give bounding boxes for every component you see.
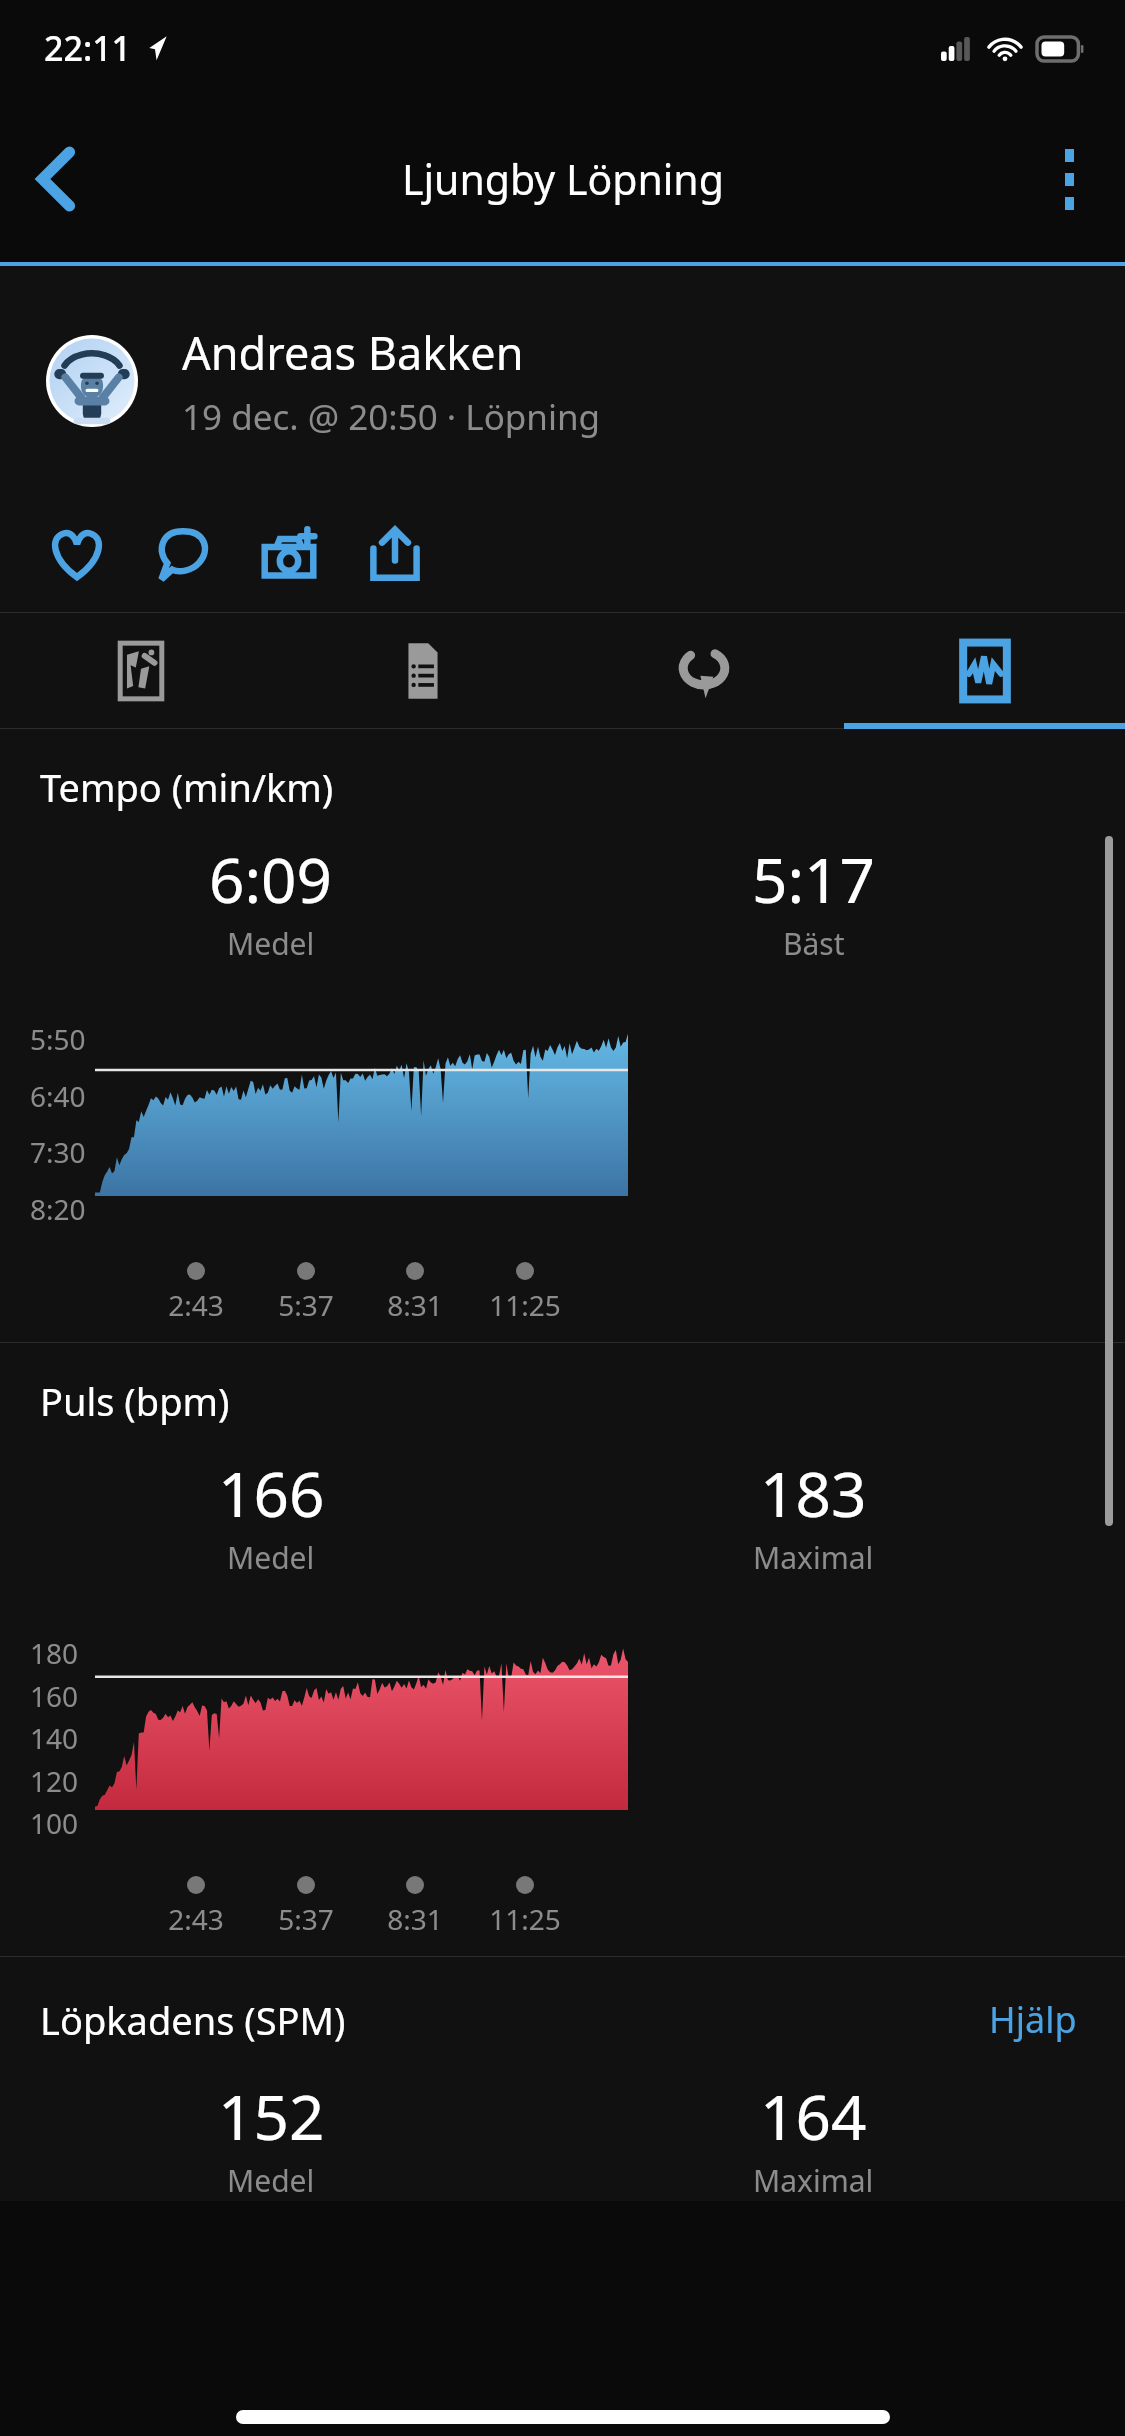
staticText: 8:20 (30, 1190, 86, 1228)
staticText: 160 (30, 1677, 79, 1715)
button[interactable]: More options (1013, 123, 1125, 235)
button[interactable]: Back (0, 123, 112, 235)
button[interactable]: Add photo (236, 496, 342, 612)
staticText: 7:30 (30, 1133, 86, 1171)
staticText: 180 (30, 1634, 79, 1672)
button[interactable]: Laps (563, 613, 844, 729)
staticText: 5:37 (256, 1286, 356, 1324)
button[interactable]: Details (282, 613, 563, 729)
staticText: Bäst (783, 923, 845, 964)
staticText: Medel (227, 1537, 315, 1578)
staticText: Maximal (753, 1537, 874, 1578)
button[interactable]: Charts (844, 613, 1125, 729)
staticText: 183 (760, 1451, 867, 1535)
button[interactable]: Andreas Bakken (0, 266, 1125, 496)
staticText: 164 (760, 2074, 867, 2158)
button[interactable]: Hjälp (981, 1987, 1085, 2052)
button[interactable]: Map (0, 613, 282, 729)
staticText: Ljungby Löpning (402, 151, 724, 207)
staticText: 5:37 (256, 1900, 356, 1938)
staticText: 8:31 (365, 1900, 465, 1938)
staticText: 2:43 (146, 1286, 246, 1324)
button[interactable]: Like (24, 496, 130, 612)
staticText: 140 (30, 1719, 79, 1757)
button[interactable]: Share (342, 496, 448, 612)
staticText: 11:25 (475, 1900, 575, 1938)
button[interactable]: Comment (130, 496, 236, 612)
staticText: 19 dec. @ 20:50 · Löpning (182, 393, 601, 441)
staticText: 8:31 (365, 1286, 465, 1324)
staticText: 5:50 (30, 1020, 86, 1058)
staticText: Tempo (min/km) (40, 761, 334, 813)
staticText: 11:25 (475, 1286, 575, 1324)
staticText: 5:17 (752, 837, 876, 921)
staticText: Medel (227, 2160, 315, 2201)
staticText: Maximal (753, 2160, 874, 2201)
staticText: Löpkadens (SPM) (40, 1994, 346, 2046)
staticText: 100 (30, 1804, 79, 1842)
staticText: 6:09 (209, 837, 333, 921)
staticText: Andreas Bakken (182, 322, 524, 383)
staticText: 2:43 (146, 1900, 246, 1938)
staticText: 166 (218, 1451, 325, 1535)
staticText: Medel (227, 923, 315, 964)
staticText: 6:40 (30, 1077, 86, 1115)
staticText: 120 (30, 1762, 79, 1800)
staticText: Puls (bpm) (40, 1375, 230, 1427)
staticText: 152 (218, 2074, 325, 2158)
staticText: 22:11 (44, 25, 132, 71)
staticText: Hjälp (989, 1995, 1077, 2044)
